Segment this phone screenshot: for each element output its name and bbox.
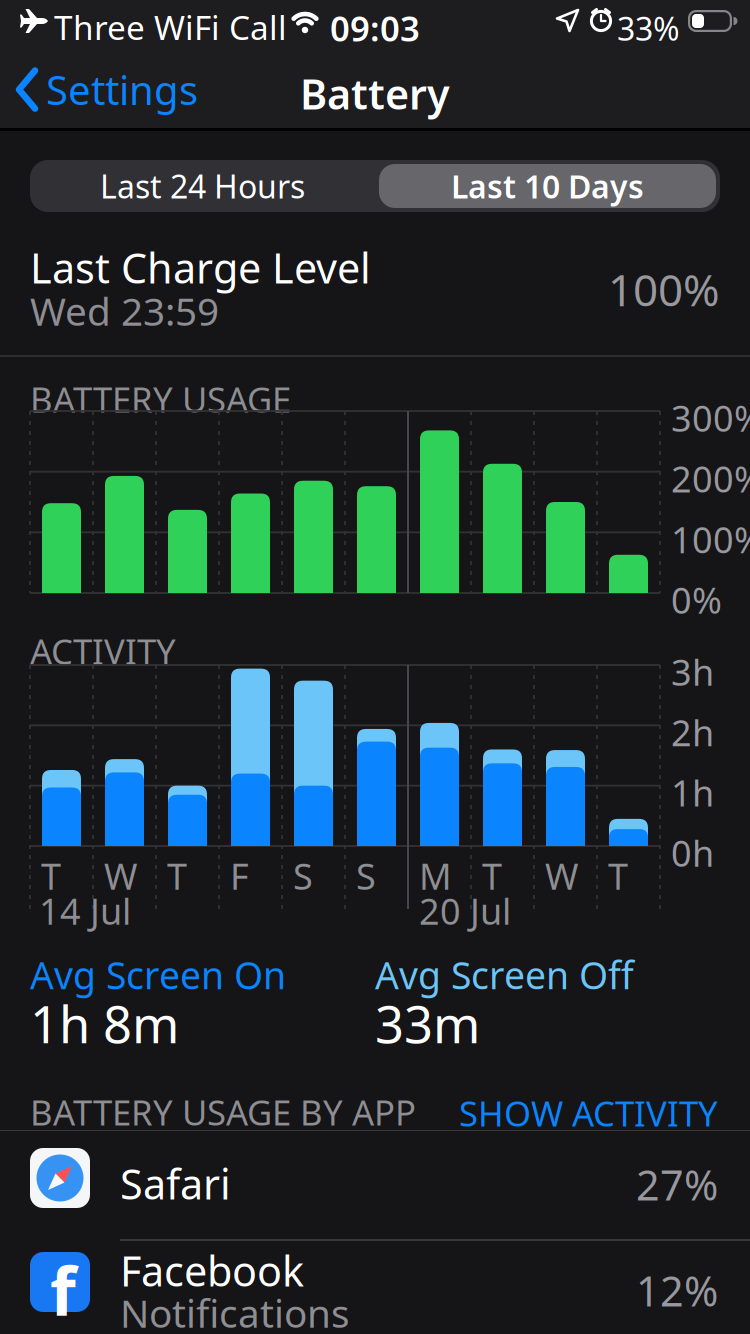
- button[interactable]: Last 24 Hours: [30, 160, 375, 212]
- button[interactable]: f: [0, 1241, 750, 1334]
- staticText: Last Charge Level: [30, 240, 371, 295]
- staticText: W: [104, 852, 137, 900]
- button[interactable]: Last 10 Days: [379, 164, 716, 208]
- staticText: T: [482, 852, 502, 900]
- staticText: M: [419, 852, 452, 900]
- staticText: 0%: [671, 576, 722, 624]
- staticText: W: [545, 852, 578, 900]
- staticText: T: [608, 852, 628, 900]
- staticText: 14 Jul: [39, 887, 131, 935]
- staticText: Three WiFi Call: [54, 5, 287, 49]
- staticText: S: [293, 852, 313, 900]
- staticText: Safari: [120, 1156, 231, 1211]
- staticText: S: [356, 852, 376, 900]
- staticText: 100%: [608, 260, 720, 318]
- staticText: 200%: [671, 455, 750, 502]
- staticText: f: [50, 1246, 76, 1334]
- staticText: Facebook: [120, 1243, 304, 1298]
- button[interactable]: Safari: [0, 1131, 750, 1239]
- staticText: F: [230, 852, 249, 900]
- staticText: Notifications: [120, 1287, 350, 1334]
- staticText: Settings: [46, 63, 198, 116]
- staticText: BATTERY USAGE: [30, 376, 291, 422]
- staticText: Wed 23:59: [30, 285, 219, 336]
- staticText: T: [41, 852, 61, 900]
- staticText: 1h 8m: [30, 990, 179, 1057]
- staticText: SHOW ACTIVITY: [459, 1090, 718, 1136]
- staticText: Last 24 Hours: [100, 165, 305, 207]
- staticText: Avg Screen On: [30, 950, 286, 1000]
- staticText: 100%: [671, 515, 750, 563]
- staticText: Battery: [300, 66, 450, 121]
- staticText: 27%: [636, 1157, 718, 1212]
- staticText: 2h: [671, 708, 714, 756]
- button[interactable]: Settings: [16, 63, 198, 116]
- staticText: 300%: [671, 394, 750, 442]
- staticText: ACTIVITY: [30, 628, 176, 674]
- staticText: Last 10 Days: [451, 165, 644, 207]
- staticText: 1h: [671, 769, 714, 816]
- staticText: T: [167, 852, 187, 900]
- staticText: 20 Jul: [419, 887, 511, 935]
- button[interactable]: SHOW ACTIVITY: [459, 1090, 718, 1136]
- staticText: 0h: [671, 829, 714, 877]
- staticText: 3h: [671, 648, 714, 696]
- staticText: 33%: [617, 7, 680, 49]
- staticText: Avg Screen Off: [375, 950, 634, 1000]
- staticText: BATTERY USAGE BY APP: [30, 1089, 416, 1135]
- staticText: 12%: [636, 1263, 718, 1318]
- staticText: 09:03: [330, 5, 420, 51]
- staticText: 33m: [375, 990, 480, 1057]
